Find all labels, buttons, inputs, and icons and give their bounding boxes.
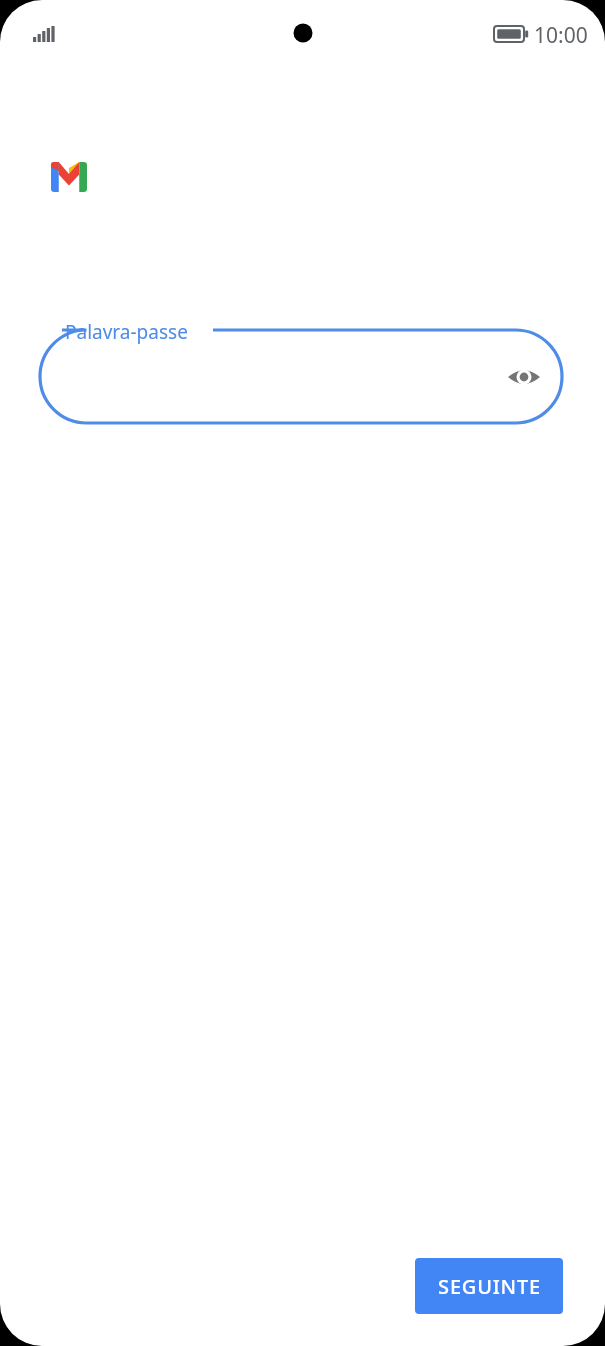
staticText: 10:00 [534,21,588,49]
staticText: SEGUINTE [438,1273,541,1300]
button[interactable]: SEGUINTE [415,1258,563,1314]
button[interactable]: Mostrar palavra-passe [500,353,548,401]
staticText: Palavra-passe [65,319,188,345]
